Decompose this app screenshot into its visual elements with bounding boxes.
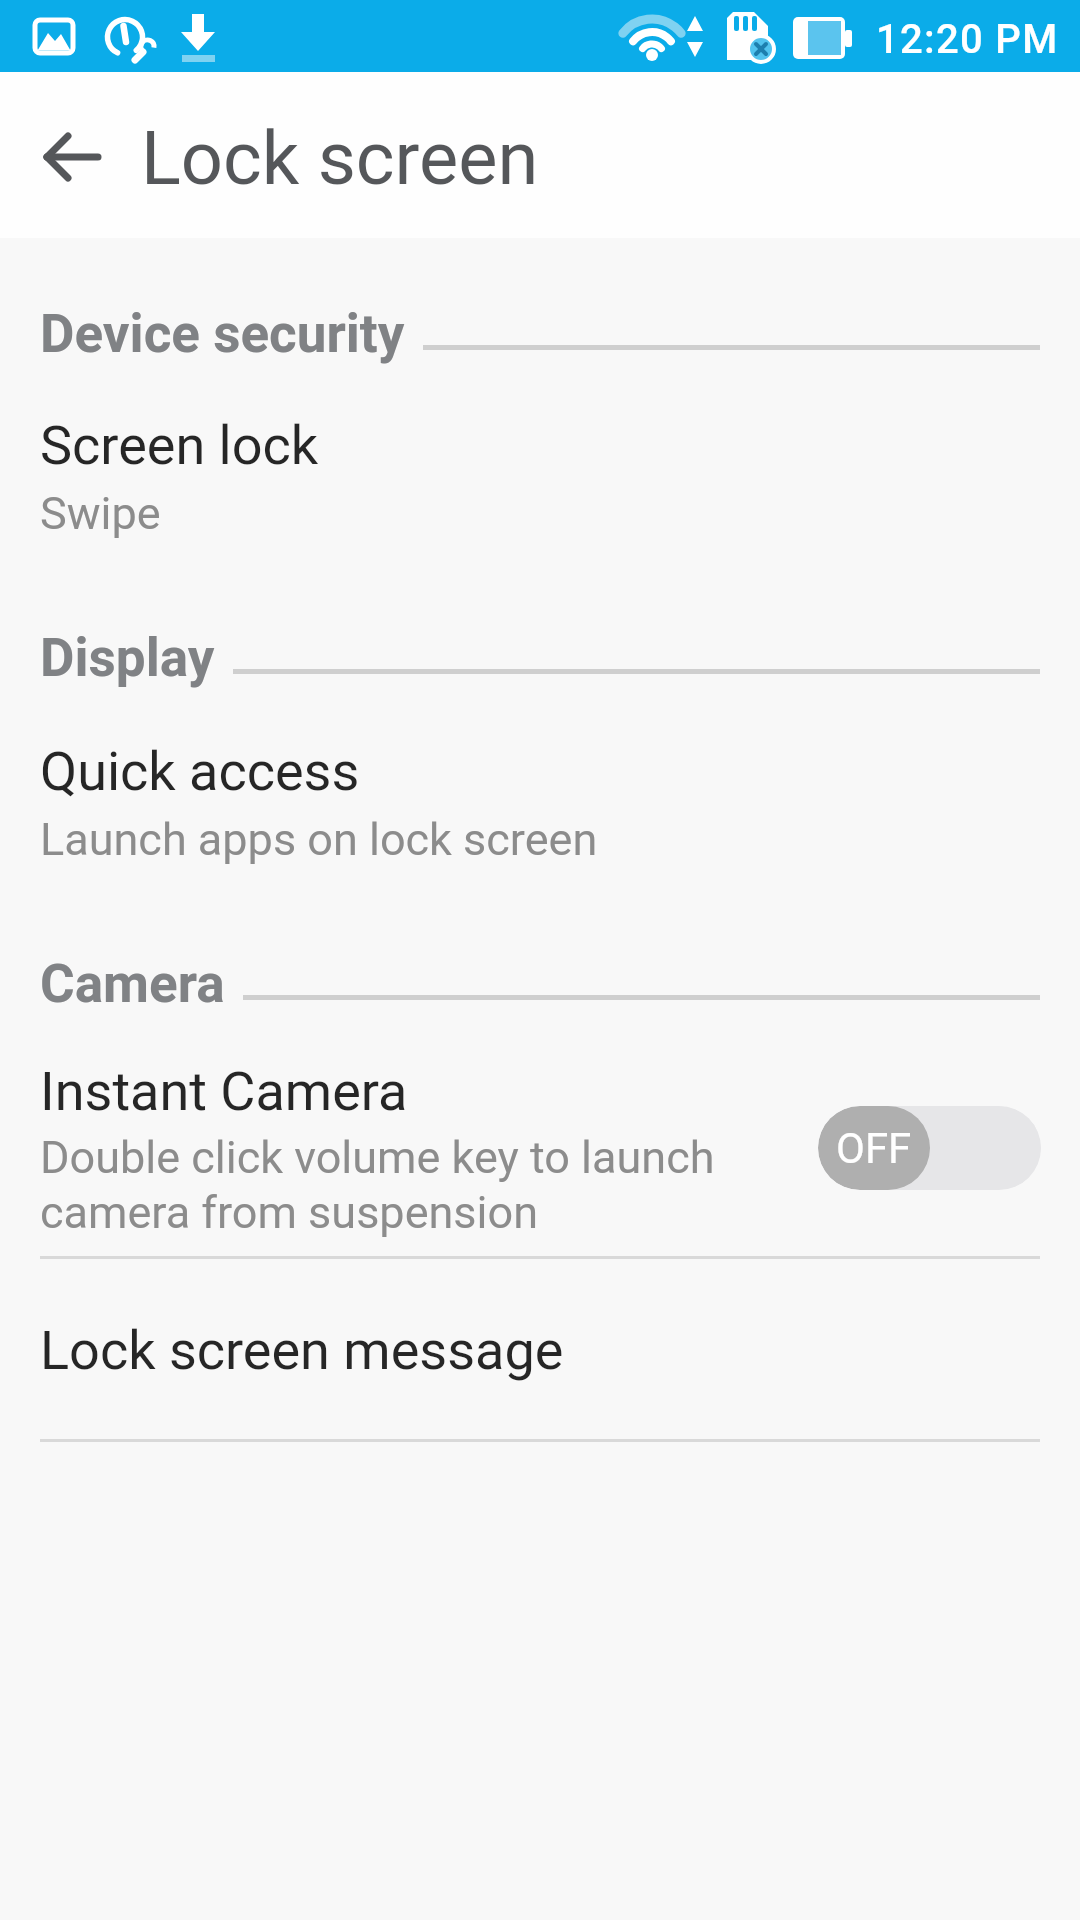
button[interactable] [28, 125, 116, 189]
staticText: Lock screen message [40, 1319, 564, 1382]
staticText: Device security [40, 303, 405, 365]
button[interactable]: Quick access [0, 720, 1080, 870]
staticText: Screen lock [40, 414, 319, 477]
staticText: 12:20 PM [876, 16, 1059, 63]
staticText: Swipe [40, 487, 161, 540]
staticText: Display [40, 627, 215, 689]
staticText: Instant Camera [40, 1060, 408, 1123]
button[interactable]: Screen lock [0, 395, 1080, 545]
staticText: Quick access [40, 740, 360, 803]
staticText: OFF [836, 1124, 912, 1173]
button[interactable]: OFF [818, 1106, 1041, 1190]
staticText: Camera [40, 953, 225, 1015]
staticText: Double click volume key to launch camera… [40, 1131, 715, 1239]
staticText: Launch apps on lock screen [40, 813, 598, 866]
button[interactable]: Lock screen message [0, 1290, 1080, 1438]
staticText: Lock screen [141, 115, 539, 202]
button[interactable]: Instant Camera [0, 1040, 1080, 1256]
